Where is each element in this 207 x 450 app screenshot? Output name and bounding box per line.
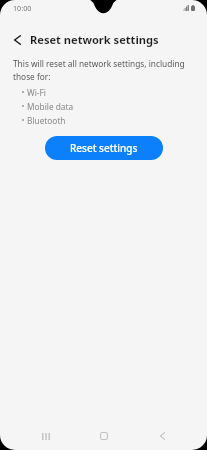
- staticText: Wi-Fi: [27, 87, 46, 98]
- button[interactable]: Back: [149, 423, 175, 449]
- staticText: Bluetooth: [27, 115, 66, 126]
- button[interactable]: Home: [91, 423, 117, 449]
- staticText: Reset network settings: [30, 32, 159, 47]
- button[interactable]: Reset settings: [45, 136, 163, 160]
- staticText: Reset settings: [70, 141, 138, 155]
- button[interactable]: Recent apps: [33, 423, 59, 449]
- staticText: This will reset all network settings, in…: [13, 58, 201, 83]
- staticText: 10:00: [13, 3, 32, 13]
- button[interactable]: Navigate up: [6, 29, 28, 51]
- staticText: Mobile data: [27, 101, 74, 112]
